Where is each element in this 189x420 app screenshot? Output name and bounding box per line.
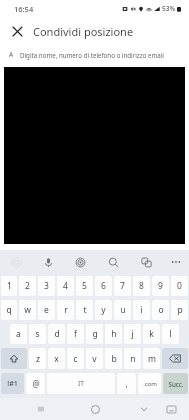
- button[interactable]: z: [29, 348, 46, 369]
- button[interactable]: v: [86, 348, 103, 369]
- staticText: t: [83, 304, 87, 316]
- staticText: k: [149, 328, 154, 340]
- button[interactable]: 5: [76, 276, 93, 296]
- staticText: v: [92, 353, 97, 365]
- staticText: A: [9, 50, 14, 59]
- staticText: 9: [158, 280, 163, 292]
- button[interactable]: r: [57, 300, 74, 320]
- staticText: j: [131, 328, 134, 340]
- staticText: i: [140, 304, 143, 316]
- staticText: s: [35, 328, 40, 340]
- button[interactable]: IT: [47, 373, 115, 394]
- staticText: 1: [7, 280, 12, 292]
- staticText: 3: [44, 280, 49, 292]
- button[interactable]: Voce: [32, 250, 64, 274]
- button[interactable]: Recenti: [32, 400, 50, 418]
- button[interactable]: l: [162, 324, 179, 344]
- button[interactable]: A: [0, 45, 189, 64]
- staticText: q: [6, 304, 12, 316]
- button[interactable]: 9: [152, 276, 169, 296]
- button[interactable]: Chiudi tastiera: [135, 400, 153, 418]
- staticText: b: [111, 353, 117, 365]
- staticText: 8: [139, 280, 144, 292]
- staticText: p: [177, 304, 183, 316]
- button[interactable]: y: [95, 300, 112, 320]
- button[interactable]: i: [133, 300, 150, 320]
- button[interactable]: n: [124, 348, 141, 369]
- button[interactable]: e: [38, 300, 55, 320]
- staticText: x: [54, 353, 59, 365]
- staticText: e: [44, 304, 49, 316]
- staticText: 53%: [162, 4, 175, 13]
- staticText: f: [74, 328, 77, 340]
- button[interactable]: 1: [1, 276, 17, 296]
- button[interactable]: j: [124, 324, 141, 344]
- staticText: !#1: [7, 379, 18, 389]
- button[interactable]: h: [105, 324, 122, 344]
- staticText: c: [73, 353, 78, 365]
- button[interactable]: ,: [117, 373, 136, 394]
- staticText: d: [54, 328, 60, 340]
- button[interactable]: 6: [95, 276, 112, 296]
- button[interactable]: k: [143, 324, 160, 344]
- button[interactable]: s: [29, 324, 46, 344]
- button[interactable]: t: [76, 300, 93, 320]
- staticText: a: [16, 328, 21, 340]
- staticText: 0: [177, 280, 182, 292]
- button[interactable]: Maiuscole: [1, 348, 27, 369]
- button[interactable]: 3: [38, 276, 55, 296]
- staticText: w: [24, 304, 31, 316]
- button[interactable]: Chiudi: [7, 21, 27, 41]
- staticText: 7: [120, 280, 125, 292]
- button[interactable]: u: [114, 300, 131, 320]
- button[interactable]: 7: [114, 276, 131, 296]
- button[interactable]: q: [1, 300, 17, 320]
- button[interactable]: Traduci: [130, 250, 163, 274]
- button[interactable]: Emoji: [64, 250, 97, 274]
- button[interactable]: 0: [171, 276, 188, 296]
- staticText: .com: [143, 380, 157, 388]
- staticText: o: [158, 304, 164, 316]
- button[interactable]: g: [86, 324, 103, 344]
- staticText: ,: [125, 378, 128, 389]
- button[interactable]: Cerca: [97, 250, 130, 274]
- button[interactable]: 4: [57, 276, 74, 296]
- staticText: h: [111, 328, 117, 340]
- staticText: z: [36, 353, 40, 365]
- staticText: 2: [25, 280, 30, 292]
- button[interactable]: c: [67, 348, 84, 369]
- staticText: Succ.: [168, 380, 184, 388]
- button[interactable]: f: [67, 324, 84, 344]
- staticText: Digita nome, numero di telefono o indiri…: [20, 51, 164, 59]
- button[interactable]: d: [48, 324, 65, 344]
- button[interactable]: b: [105, 348, 122, 369]
- button[interactable]: Succ.: [163, 373, 188, 394]
- button[interactable]: p: [171, 300, 188, 320]
- button[interactable]: .com: [138, 373, 161, 394]
- button[interactable]: 8: [133, 276, 150, 296]
- staticText: y: [101, 304, 106, 316]
- button[interactable]: Altro: [163, 250, 189, 274]
- staticText: l: [169, 328, 172, 340]
- button[interactable]: Home: [86, 400, 104, 418]
- staticText: 4: [63, 280, 68, 292]
- staticText: IT: [78, 379, 84, 388]
- button[interactable]: m: [143, 348, 160, 369]
- staticText: m: [148, 353, 156, 365]
- button[interactable]: x: [48, 348, 65, 369]
- staticText: 16:54: [14, 4, 34, 14]
- staticText: 5: [82, 280, 87, 292]
- button[interactable]: !#1: [1, 373, 24, 394]
- button[interactable]: w: [19, 300, 36, 320]
- button[interactable]: o: [152, 300, 169, 320]
- staticText: r: [64, 304, 68, 316]
- staticText: g: [92, 328, 98, 340]
- staticText: 6: [101, 280, 106, 292]
- button[interactable]: Cancella: [162, 348, 188, 369]
- button[interactable]: a: [10, 324, 27, 344]
- button[interactable]: @: [26, 373, 45, 394]
- button[interactable]: 2: [19, 276, 36, 296]
- button[interactable]: Cambia tastiera: [163, 401, 179, 417]
- staticText: u: [120, 304, 126, 316]
